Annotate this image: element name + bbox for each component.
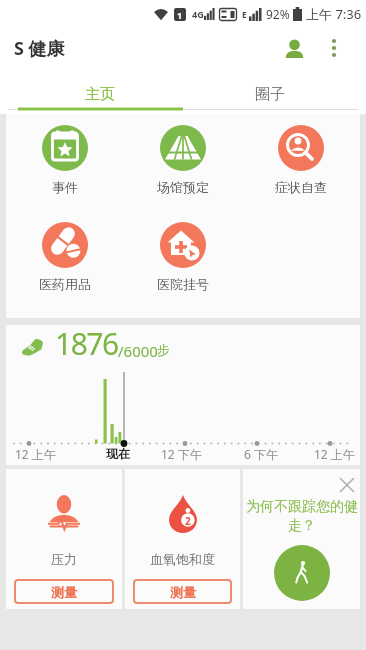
button[interactable]: 2	[125, 469, 240, 609]
staticText: 压力	[51, 551, 77, 567]
button[interactable]: 压力	[6, 469, 122, 609]
button[interactable]	[322, 36, 346, 60]
button[interactable]: 场馆预定	[124, 125, 242, 195]
staticText: 测量	[51, 584, 77, 600]
staticText: 12 下午	[161, 446, 202, 462]
staticText: 医院挂号	[157, 276, 209, 292]
button[interactable]: 圈子	[183, 68, 366, 114]
staticText: 圈子	[255, 85, 285, 104]
staticText: 2	[185, 514, 191, 528]
staticText: /6000	[118, 341, 158, 361]
staticText: 上午 7:36	[306, 5, 362, 23]
button[interactable]: 为何不跟踪您的健 走？	[243, 469, 360, 609]
staticText: 6 下午	[244, 446, 278, 462]
staticText: 测量	[170, 584, 196, 600]
staticText: 主页	[85, 85, 115, 104]
staticText: 12 上午	[314, 446, 355, 462]
staticText: 场馆预定	[157, 179, 209, 195]
button[interactable]: 测量	[14, 579, 114, 604]
staticText: 血氧饱和度	[150, 551, 215, 567]
button[interactable]: 医院挂号	[124, 222, 242, 292]
staticText: 现在	[106, 446, 130, 461]
staticText: 为何不跟踪您的健 走？	[246, 498, 358, 534]
staticText: 12 上午	[15, 446, 56, 462]
staticText: 92%	[266, 6, 290, 22]
button[interactable]: 症状自查	[242, 125, 360, 195]
button[interactable]: 医药用品	[6, 222, 124, 292]
staticText: 1	[177, 9, 183, 21]
staticText: 4G	[192, 8, 204, 20]
staticText: S 健康	[14, 36, 65, 61]
staticText: 1876	[55, 323, 118, 364]
button[interactable]: 1876	[6, 325, 360, 465]
staticText: 医药用品	[39, 276, 91, 292]
button[interactable]: 主页	[0, 68, 183, 114]
button[interactable]: 测量	[133, 579, 232, 604]
staticText: 症状自查	[275, 179, 327, 195]
button[interactable]	[276, 30, 312, 66]
staticText: 步	[157, 342, 170, 358]
button[interactable]: 事件	[6, 125, 124, 195]
staticText: E	[242, 9, 247, 20]
staticText: 事件	[52, 179, 78, 195]
